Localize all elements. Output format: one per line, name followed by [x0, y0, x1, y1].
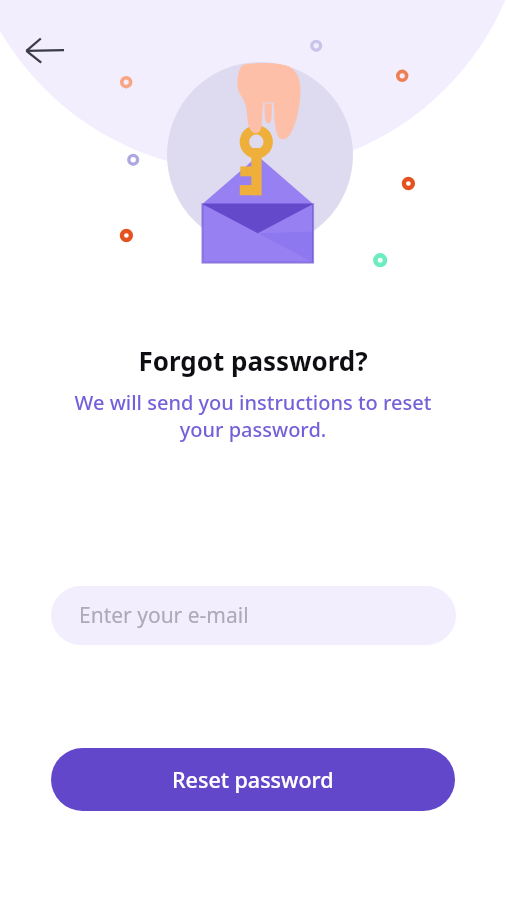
button[interactable]: Back [4, 27, 52, 75]
staticText: Enter your e-mail [79, 601, 249, 630]
staticText: Forgot password? [0, 343, 506, 378]
button[interactable]: Reset password [51, 748, 455, 811]
button[interactable]: Enter your e-mail [51, 586, 456, 645]
staticText: We will send you instructions to reset y… [68, 389, 438, 443]
staticText: Reset password [172, 765, 334, 794]
